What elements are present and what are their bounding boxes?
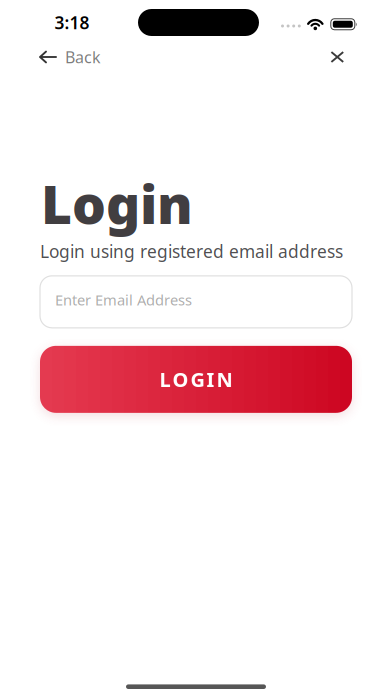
staticText: 3:18 <box>54 11 89 34</box>
staticText: Login using registered email address <box>40 240 343 263</box>
staticText: Enter Email Address <box>55 290 192 310</box>
button[interactable]: Close <box>331 51 353 63</box>
button[interactable]: L O G I N <box>40 346 352 413</box>
button[interactable]: Enter Email Address <box>40 276 352 328</box>
staticText: Login <box>41 168 193 239</box>
staticText: Back <box>65 46 101 68</box>
button[interactable]: Back <box>39 46 101 68</box>
staticText: L O G I N <box>159 366 232 393</box>
